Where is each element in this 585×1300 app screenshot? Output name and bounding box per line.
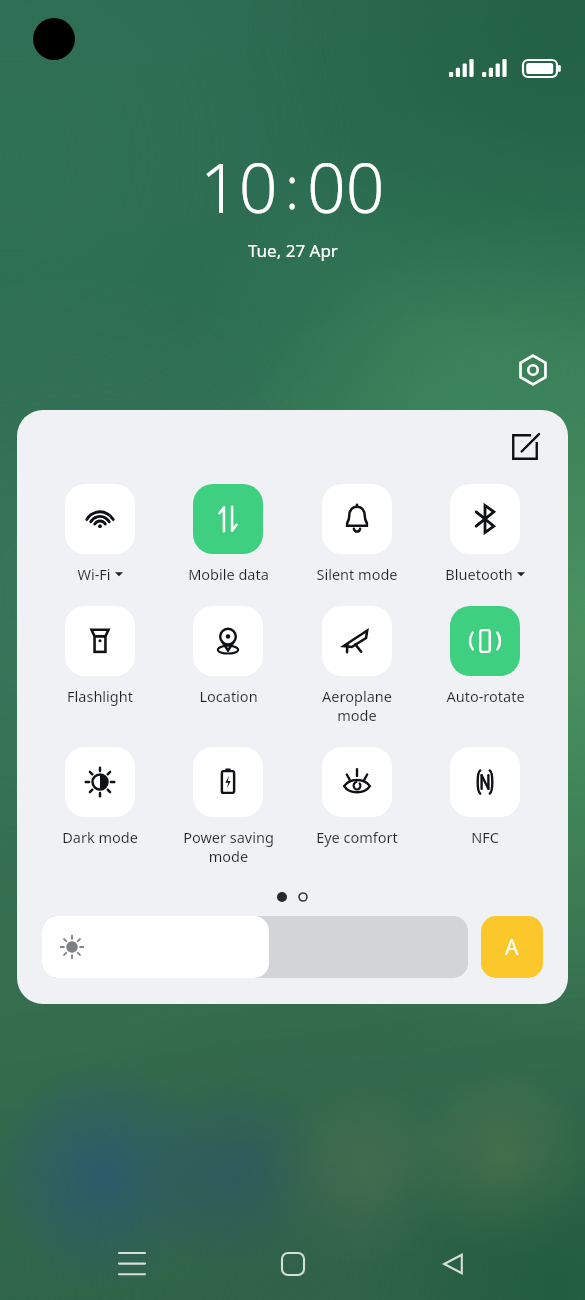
button[interactable]: A [481, 916, 543, 978]
button[interactable]: Edit quick settings [508, 430, 542, 464]
button[interactable]: Settings [515, 352, 551, 388]
button[interactable]: Recents [103, 1235, 161, 1293]
staticText: : [285, 147, 300, 226]
staticText: Aeroplane mode [322, 686, 392, 725]
button[interactable]: Silent mode [303, 484, 411, 584]
button[interactable]: Flashlight [46, 606, 154, 706]
staticText: Dark mode [62, 827, 138, 847]
button[interactable]: Location [174, 606, 282, 706]
staticText: 10 [200, 140, 278, 233]
button[interactable]: Back [424, 1235, 482, 1293]
button[interactable]: Brightness [42, 916, 468, 978]
staticText: 00 [307, 140, 385, 233]
button[interactable]: Power saving mode [174, 747, 282, 866]
staticText: Silent mode [316, 564, 398, 584]
button[interactable]: Eye comfort [303, 747, 411, 847]
staticText: Tue, 27 Apr [248, 239, 338, 262]
button[interactable]: Dark mode [46, 747, 154, 847]
staticText: Power saving mode [183, 827, 274, 866]
button[interactable]: Auto-rotate [431, 606, 539, 706]
button[interactable]: Mobile data [174, 484, 282, 584]
button[interactable]: Bluetooth [431, 484, 539, 584]
staticText: Location [199, 686, 258, 706]
staticText: Wi-Fi [77, 564, 111, 584]
button[interactable]: Wi-Fi [46, 484, 154, 584]
staticText: Mobile data [188, 564, 269, 584]
staticText: NFC [471, 827, 499, 847]
staticText: Flashlight [67, 686, 133, 706]
staticText: Auto-rotate [446, 686, 525, 706]
staticText: A [505, 933, 519, 962]
button[interactable]: NFC [431, 747, 539, 847]
staticText: Eye comfort [316, 827, 398, 847]
staticText: Bluetooth [445, 564, 513, 584]
button[interactable]: Home [264, 1235, 322, 1293]
button[interactable]: Aeroplane mode [303, 606, 411, 725]
